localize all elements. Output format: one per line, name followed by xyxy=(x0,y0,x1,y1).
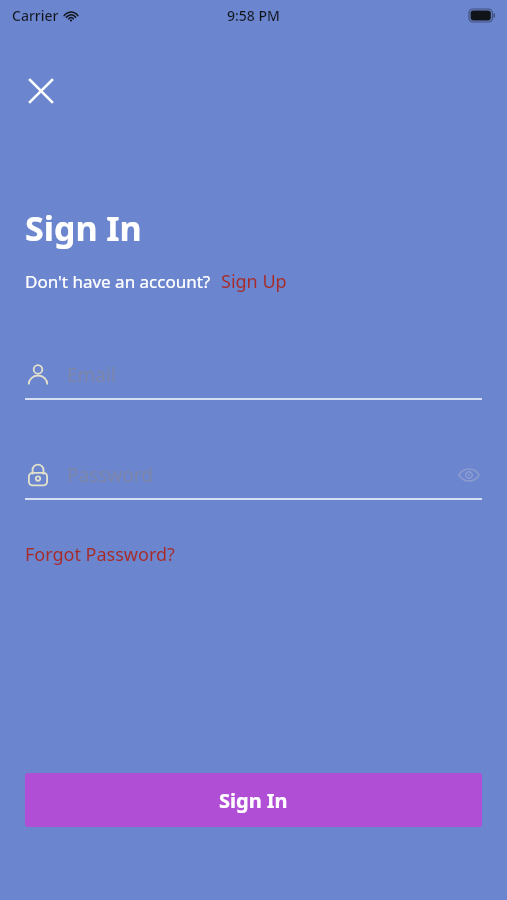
button[interactable]: Close xyxy=(18,68,64,114)
button[interactable]: Forgot Password? xyxy=(25,542,175,567)
staticText: Don't have an account? xyxy=(25,270,211,293)
button[interactable]: Sign Up xyxy=(221,269,287,294)
staticText: Sign In xyxy=(219,787,288,814)
button[interactable]: Email xyxy=(25,356,482,394)
button[interactable]: Show password xyxy=(456,462,482,488)
staticText: Carrier xyxy=(12,6,59,25)
staticText: Email xyxy=(67,362,116,388)
staticText: Forgot Password? xyxy=(25,542,175,567)
button[interactable]: Sign In xyxy=(25,773,482,827)
staticText: Password xyxy=(67,462,153,488)
staticText: Sign Up xyxy=(221,269,287,294)
staticText: Sign In xyxy=(25,205,142,251)
staticText: 9:58 PM xyxy=(227,6,280,25)
button[interactable]: Password xyxy=(25,456,482,494)
